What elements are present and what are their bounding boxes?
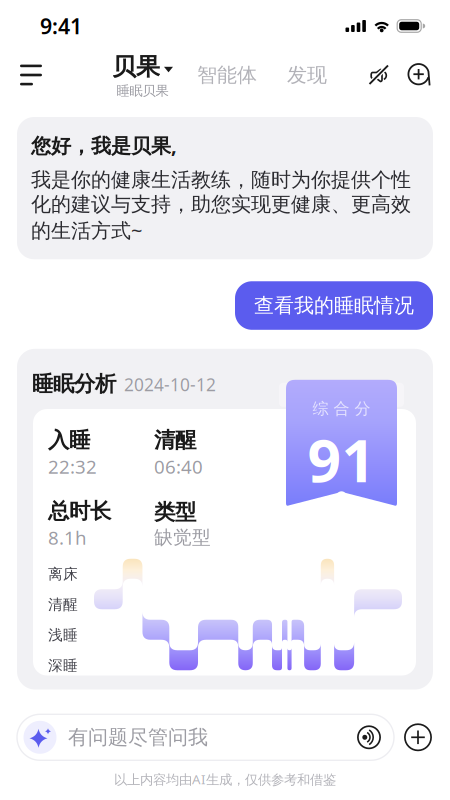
staticText: 浅睡 bbox=[48, 626, 78, 644]
staticText: 06:40 bbox=[154, 454, 203, 479]
staticText: 缺觉型 bbox=[154, 526, 211, 549]
staticText: 2024-10-12 bbox=[124, 373, 216, 396]
button[interactable]: Mute notifications bbox=[364, 52, 394, 98]
staticText: 离床 bbox=[48, 565, 78, 583]
button[interactable]: 智能体 bbox=[197, 52, 257, 98]
staticText: 91 bbox=[307, 420, 375, 498]
staticText: 查看我的睡眠情况 bbox=[254, 293, 414, 318]
staticText: 综 合 分 bbox=[312, 399, 370, 418]
staticText: 清醒 bbox=[154, 427, 196, 453]
staticText: 发现 bbox=[287, 63, 327, 87]
staticText: 我是你的健康生活教练，随时为你提供个性化的建议与支持，助您实现更健康、更高效的生… bbox=[31, 168, 411, 243]
staticText: 智能体 bbox=[197, 63, 257, 87]
staticText: 以上内容均由AI生成，仅供参考和借鉴 bbox=[114, 770, 336, 788]
staticText: 深睡 bbox=[48, 656, 78, 674]
button[interactable]: 有问题尽管问我 bbox=[17, 714, 394, 760]
button[interactable]: Add attachment bbox=[394, 713, 442, 761]
button[interactable]: 发现 bbox=[287, 52, 327, 98]
staticText: 类型 bbox=[154, 499, 196, 525]
staticText: 睡眠贝果 bbox=[116, 83, 168, 99]
staticText: 贝果 bbox=[112, 52, 160, 82]
button[interactable]: New chat bbox=[406, 52, 432, 98]
button[interactable]: 贝果 bbox=[112, 52, 173, 98]
staticText: 睡眠分析 bbox=[32, 371, 116, 397]
staticText: 清醒 bbox=[48, 595, 78, 613]
staticText: 8.1h bbox=[48, 525, 87, 550]
staticText: 总时长 bbox=[48, 498, 111, 524]
button[interactable]: Menu bbox=[20, 52, 60, 98]
staticText: 您好，我是贝果, bbox=[31, 132, 177, 159]
button[interactable]: 查看我的睡眠情况 bbox=[235, 281, 433, 330]
staticText: 有问题尽管问我 bbox=[68, 725, 208, 750]
staticText: 9:41 bbox=[40, 12, 82, 40]
staticText: 22:32 bbox=[48, 454, 97, 479]
staticText: 入睡 bbox=[48, 427, 90, 453]
